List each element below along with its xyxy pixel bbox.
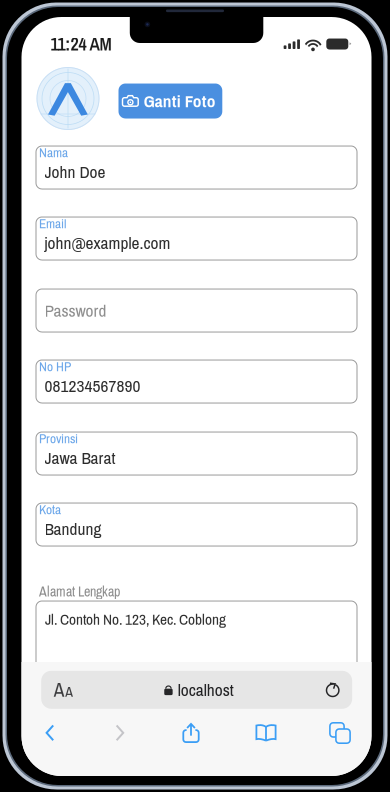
staticText: A <box>65 682 73 701</box>
staticText: John Doe <box>44 160 105 183</box>
staticText: Kota <box>39 500 61 518</box>
button[interactable]: Bookmarks <box>242 713 290 753</box>
staticText: localhost <box>178 678 234 701</box>
staticText: 11:24 AM <box>50 32 111 56</box>
button[interactable]: Ganti Foto <box>118 83 222 118</box>
button[interactable]: Forward <box>96 713 144 753</box>
button[interactable]: A <box>41 671 352 709</box>
staticText: Email <box>39 214 66 232</box>
button[interactable]: Tabs <box>316 713 364 753</box>
staticText: 081234567890 <box>44 374 140 397</box>
staticText: A <box>54 677 65 703</box>
button[interactable]: Back <box>26 713 74 753</box>
staticText: Alamat Lengkap <box>39 582 120 601</box>
staticText: Nama <box>39 143 68 161</box>
staticText: Password <box>44 299 106 322</box>
staticText: Jawa Barat <box>44 446 115 469</box>
button[interactable]: Share <box>167 713 215 753</box>
staticText: Jl. Contoh No. 123, Kec. Coblong <box>45 609 226 630</box>
staticText: Ganti Foto <box>144 89 216 113</box>
staticText: john@example.com <box>44 231 170 254</box>
staticText: Bandung <box>44 517 101 540</box>
staticText: No HP <box>39 357 71 375</box>
staticText: Provinsi <box>39 429 78 447</box>
